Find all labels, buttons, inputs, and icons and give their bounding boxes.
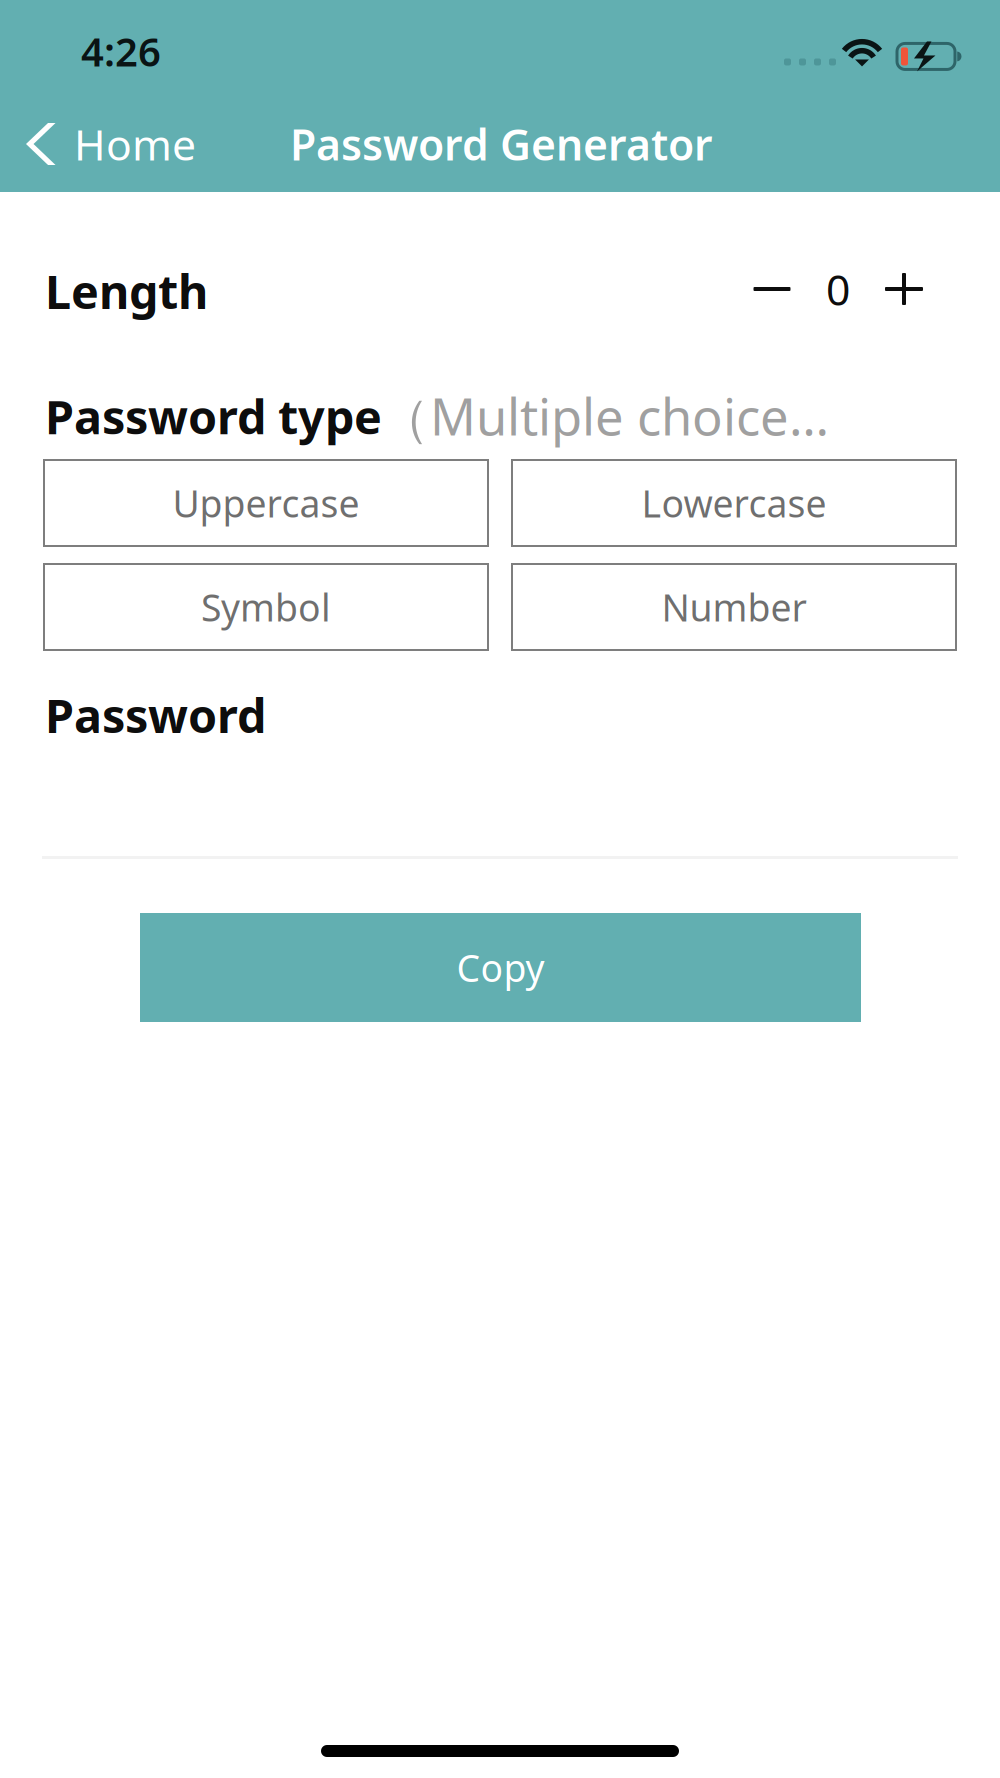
staticText: Length [45, 260, 208, 322]
staticText: Lowercase [641, 478, 826, 528]
staticText: 0 [826, 261, 850, 317]
staticText: Home [74, 116, 196, 172]
button[interactable]: Lowercase [512, 460, 956, 546]
staticText: （Multiple choice… [379, 382, 829, 450]
staticText: Copy [456, 943, 544, 992]
button[interactable]: Uppercase [44, 460, 488, 546]
button[interactable]: Home [0, 96, 214, 192]
staticText: Password [45, 684, 266, 746]
staticText: Password type [45, 385, 382, 447]
button[interactable]: Copy [140, 913, 861, 1022]
staticText: Symbol [201, 582, 331, 632]
button[interactable]: Increase length [871, 258, 937, 320]
staticText: Number [661, 582, 806, 632]
staticText: Password Generator [290, 116, 713, 172]
staticText: 4:26 [81, 24, 161, 77]
button[interactable]: Symbol [44, 564, 488, 650]
staticText: Uppercase [172, 478, 359, 528]
button[interactable]: Decrease length [739, 258, 805, 320]
button[interactable]: Number [512, 564, 956, 650]
